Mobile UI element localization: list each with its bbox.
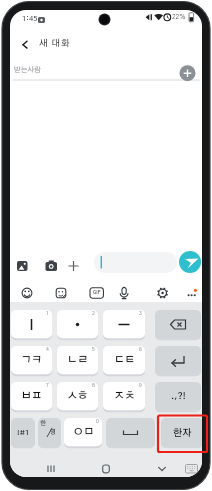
staticText: 3 [139, 311, 142, 316]
staticText: ㅅㅎ [67, 391, 88, 402]
staticText: 새 대화 [39, 39, 71, 48]
button[interactable]: 1 [11, 310, 52, 339]
staticText: ㄷㅌ [114, 355, 135, 366]
button[interactable]: ㄷㅌ [103, 346, 145, 375]
staticText: 받는사람 [14, 66, 41, 73]
button[interactable] [38, 418, 61, 447]
button[interactable]: 한자 [161, 418, 202, 447]
button[interactable]: ㅅㅎ [57, 382, 98, 411]
staticText: 한자 [173, 428, 192, 438]
button[interactable]: ㄴㄹ [57, 346, 98, 375]
staticText: 8 [92, 383, 95, 388]
button[interactable]: ㅂㅍ [11, 382, 52, 411]
staticText: ㅇㅁ [73, 427, 94, 438]
button[interactable]: ㅈㅊ [103, 382, 145, 411]
button[interactable]: ㅇㅁ [64, 418, 102, 447]
button[interactable] [155, 346, 201, 375]
button[interactable] [94, 252, 177, 273]
staticText: 영 [50, 429, 57, 435]
staticText: 22% [172, 14, 186, 21]
staticText: .,?! [171, 392, 186, 401]
staticText: GIF [93, 290, 101, 295]
staticText: 2 [92, 311, 95, 316]
staticText: ㄱㅋ [21, 355, 42, 366]
staticText: !#1 [17, 429, 30, 437]
button[interactable]: .,?! [155, 382, 201, 411]
staticText: 7 [46, 383, 49, 388]
staticText: 5 [92, 347, 95, 352]
button[interactable] [155, 310, 201, 339]
staticText: ㅈㅊ [114, 391, 135, 402]
staticText: 1 [46, 311, 49, 316]
staticText: ㄴㄹ [67, 355, 88, 366]
staticText: ㅂㅍ [21, 391, 42, 402]
staticText: 4 [46, 347, 49, 352]
button[interactable]: 3 [103, 310, 145, 339]
staticText: 한 [40, 420, 47, 426]
staticText: 1:45 [22, 15, 38, 23]
staticText: 0 [96, 419, 99, 424]
button[interactable]: ㄱㅋ [11, 346, 52, 375]
staticText: 6 [139, 347, 142, 352]
button[interactable]: !#1 [11, 418, 35, 447]
button[interactable] [179, 251, 201, 273]
button[interactable] [106, 418, 155, 447]
button[interactable]: 2 [57, 310, 98, 339]
staticText: 9 [139, 383, 142, 388]
